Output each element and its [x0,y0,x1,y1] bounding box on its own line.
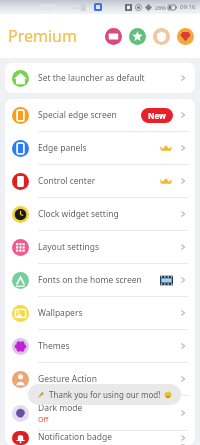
button[interactable]: Layout settings [5,231,195,263]
button[interactable]: Messages [105,28,122,45]
staticText: Edge panels [38,142,87,154]
button[interactable]: Premium [177,28,194,45]
staticText: Layout settings [38,241,99,253]
staticText: Special edge screen [38,109,117,121]
staticText: Control center [38,175,96,187]
staticText: Premium [8,25,77,47]
staticText: New [148,110,166,121]
button[interactable]: Control center [5,165,195,197]
staticText: Notification badge [38,431,112,443]
button[interactable]: Privacy [153,28,170,45]
button[interactable]: Rate us [129,28,146,45]
staticText: Dark mode [38,402,83,414]
button[interactable]: Wallpapers [5,297,195,329]
staticText: 09:16 [180,3,196,11]
staticText: Off [38,415,49,425]
staticText: Wallpapers [38,307,83,319]
staticText: 26% [155,4,166,11]
staticText: Gesture Action [38,373,97,385]
button[interactable]: Special edge screen [5,99,195,131]
button[interactable]: Gesture Action [5,363,195,395]
button[interactable]: Notification badge [5,431,195,445]
staticText: Themes [38,340,70,352]
button[interactable]: Dark mode [5,396,195,430]
button[interactable]: Set the launcher as default [5,63,195,93]
staticText: Fonts on the home screen [38,274,142,286]
button[interactable]: Edge panels [5,132,195,164]
button[interactable]: Clock widget setting [5,198,195,230]
staticText: Thank you for using our mod! [49,389,161,400]
staticText: Clock widget setting [38,208,119,220]
button[interactable]: Themes [5,330,195,362]
button[interactable]: Fonts on the home screen [5,264,195,296]
staticText: Set the launcher as default [38,72,145,84]
